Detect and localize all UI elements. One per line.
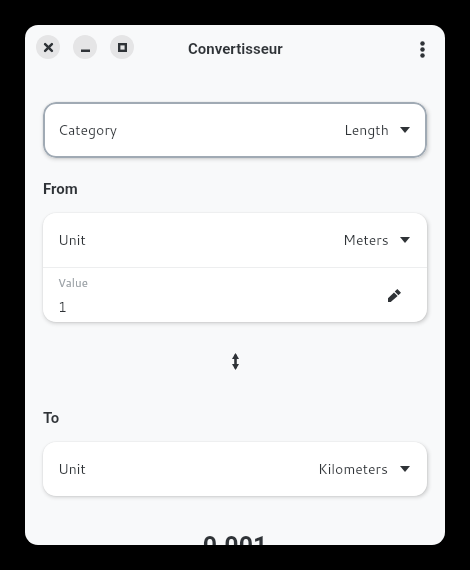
staticText: Category xyxy=(58,120,118,140)
staticText: From xyxy=(43,180,78,198)
button[interactable]: Maximize xyxy=(110,35,134,59)
staticText: To xyxy=(43,409,60,427)
staticText: Kilometers xyxy=(318,459,389,479)
staticText: Length xyxy=(344,120,389,140)
button[interactable]: Swap units xyxy=(220,346,250,376)
button[interactable]: Category xyxy=(43,102,427,158)
staticText: 0.001 xyxy=(25,532,445,545)
staticText: Meters xyxy=(343,230,389,250)
staticText: 1 xyxy=(58,297,67,317)
button[interactable]: More options xyxy=(408,35,436,63)
button[interactable]: Edit value xyxy=(381,282,407,308)
button[interactable]: Minimize xyxy=(73,35,97,59)
button[interactable]: Close xyxy=(36,35,60,59)
staticText: Unit xyxy=(58,459,86,479)
staticText: Unit xyxy=(58,230,86,250)
button[interactable]: Unit xyxy=(43,442,427,496)
button[interactable]: Unit xyxy=(43,213,427,267)
staticText: Convertisseur xyxy=(188,40,283,58)
staticText: Value xyxy=(58,274,88,290)
